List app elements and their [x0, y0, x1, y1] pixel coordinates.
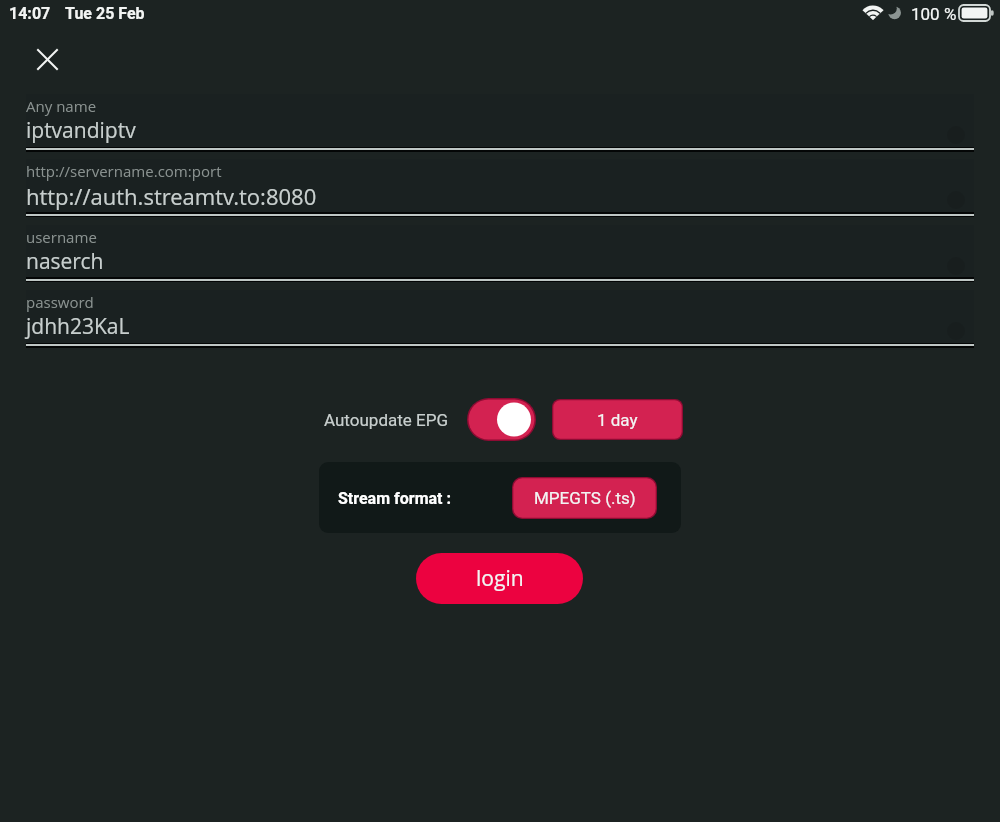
staticText: login — [476, 564, 524, 593]
button[interactable]: Clear — [942, 186, 970, 214]
staticText: jdhh23KaL — [26, 312, 130, 341]
staticText: http://servername.com:port — [26, 161, 222, 181]
button[interactable]: 1 day — [552, 399, 683, 440]
staticText: http://auth.streamtv.to:8080 — [26, 181, 317, 211]
button[interactable]: http://servername.com:port — [26, 159, 974, 213]
staticText: 1 day — [597, 410, 638, 430]
staticText: 14:07 — [9, 4, 51, 23]
button[interactable]: Autoupdate EPG toggle — [467, 398, 536, 441]
staticText: Stream format : — [338, 489, 451, 508]
staticText: password — [26, 292, 94, 312]
button[interactable]: password — [26, 290, 974, 344]
staticText: Tue 25 Feb — [65, 4, 145, 23]
staticText: MPEGTS (.ts) — [534, 488, 636, 508]
staticText: iptvandiptv — [26, 116, 136, 145]
button[interactable]: Clear — [942, 121, 970, 149]
staticText: username — [26, 227, 97, 247]
staticText: 100 % — [911, 4, 957, 24]
button[interactable]: Clear — [942, 317, 970, 345]
button[interactable]: Clear — [942, 252, 970, 280]
staticText: naserch — [26, 247, 104, 276]
button[interactable]: login — [416, 553, 583, 604]
staticText: Any name — [26, 96, 97, 116]
button[interactable]: Any name — [26, 94, 974, 148]
button[interactable]: MPEGTS (.ts) — [512, 477, 657, 519]
staticText: Autoupdate EPG — [324, 410, 448, 430]
button[interactable]: Close — [27, 39, 67, 79]
button[interactable]: username — [26, 225, 974, 279]
